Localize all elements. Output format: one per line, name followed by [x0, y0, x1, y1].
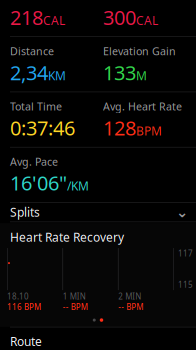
- staticText: 0:37:46: [10, 114, 75, 141]
- staticText: 115: [178, 279, 193, 290]
- staticText: 218: [10, 4, 43, 30]
- staticText: 18.10: [7, 291, 29, 302]
- staticText: -- BPM: [63, 302, 88, 312]
- staticText: Heart Rate Recovery: [10, 229, 124, 245]
- staticText: 2 MIN: [118, 291, 141, 302]
- staticText: CAL: [43, 12, 65, 28]
- staticText: Route: [10, 333, 42, 349]
- staticText: 117: [178, 248, 193, 259]
- staticText: -- BPM: [118, 302, 143, 312]
- staticText: Avg. Heart Rate: [103, 99, 182, 113]
- staticText: 1 MIN: [63, 291, 86, 302]
- staticText: 300: [103, 4, 136, 30]
- staticText: 16'06": [10, 170, 67, 196]
- staticText: M: [136, 67, 147, 83]
- button[interactable]: Splits: [10, 203, 196, 222]
- staticText: Total Time: [10, 99, 62, 113]
- staticText: ⌄: [176, 204, 188, 220]
- staticText: Elevation Gain: [103, 44, 176, 58]
- staticText: BPM: [136, 123, 162, 139]
- staticText: 133: [103, 59, 136, 86]
- staticText: Splits: [10, 204, 40, 220]
- staticText: Distance: [10, 44, 54, 58]
- staticText: /KM: [67, 178, 89, 194]
- staticText: 128: [103, 114, 136, 141]
- staticText: 116 BPM: [7, 302, 41, 312]
- staticText: KM: [48, 67, 66, 83]
- staticText: Avg. Pace: [10, 154, 58, 169]
- staticText: CAL: [136, 12, 158, 28]
- staticText: 2,34: [10, 59, 48, 86]
